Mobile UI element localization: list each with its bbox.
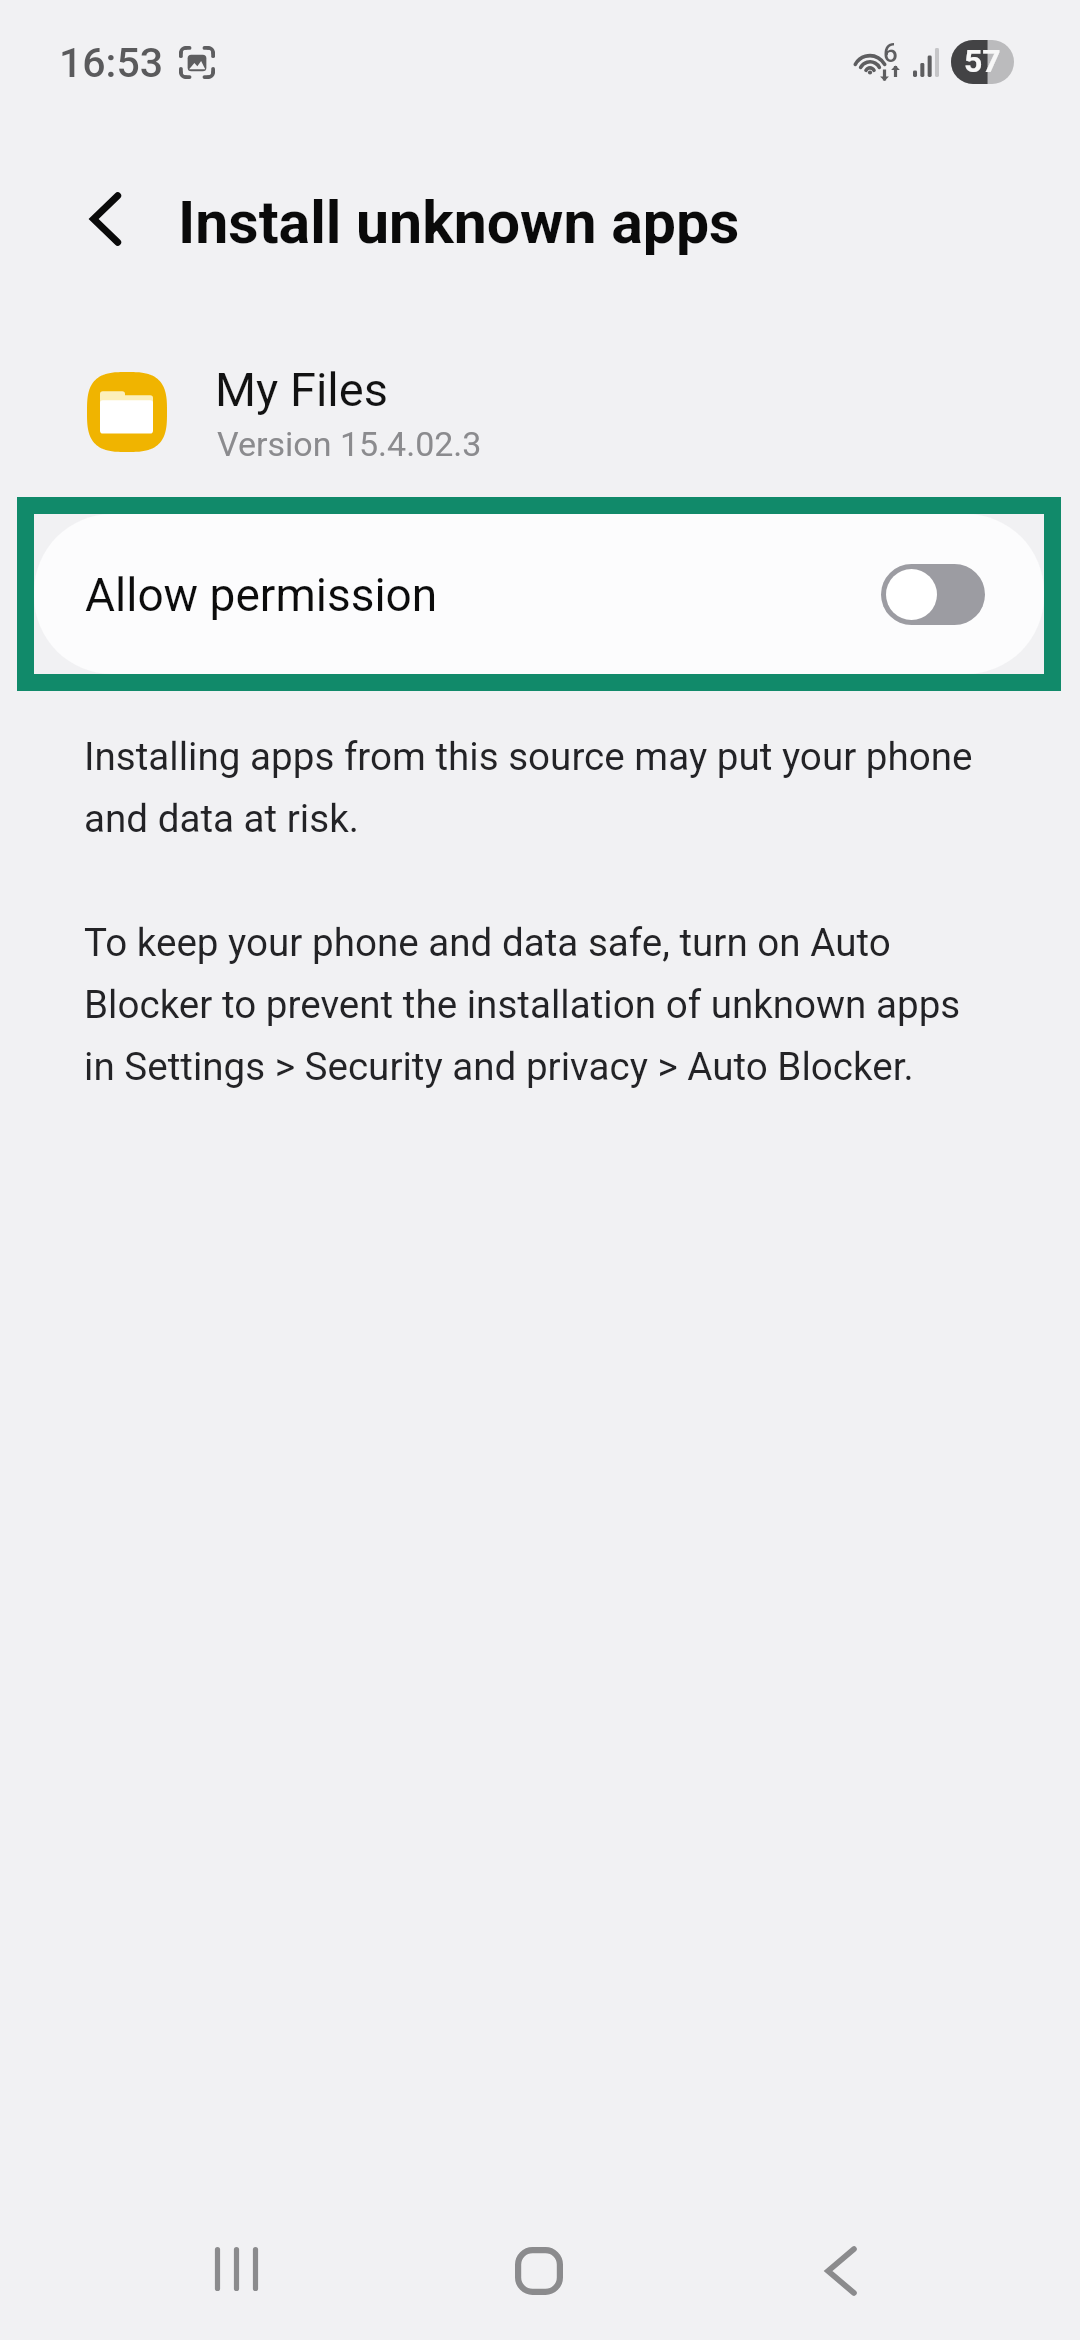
button[interactable]: Allow permission	[881, 564, 985, 625]
button[interactable]: Home	[459, 2192, 619, 2340]
staticText: My Files	[215, 362, 388, 417]
button[interactable]: Back	[761, 2192, 921, 2340]
staticText: 57	[964, 42, 1001, 80]
staticText: Allow permission	[85, 568, 438, 622]
staticText: 6	[883, 38, 898, 68]
staticText: To keep your phone and data safe, turn o…	[84, 920, 984, 1090]
button[interactable]: Recent apps	[157, 2190, 317, 2340]
staticText: Version 15.4.02.3	[217, 424, 482, 464]
staticText: Install unknown apps	[178, 188, 740, 257]
button[interactable]: Allow permission	[34, 514, 1044, 674]
staticText: 16:53	[59, 39, 164, 87]
button[interactable]: Navigate up	[52, 166, 158, 272]
staticText: Installing apps from this source may put…	[84, 734, 984, 842]
